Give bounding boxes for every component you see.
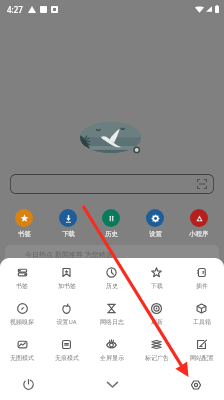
button[interactable]: 加书签 <box>44 261 89 297</box>
staticText: 加书签 <box>58 282 76 290</box>
button[interactable]: 小程序 <box>189 209 209 238</box>
staticText: 历史 <box>105 230 118 238</box>
button[interactable]: 历史 <box>89 261 134 297</box>
staticText: 标记广告 <box>145 354 169 362</box>
staticText: 无图模式 <box>10 354 34 362</box>
staticText: 全屏显示 <box>100 354 124 362</box>
button[interactable]: 网站配置 <box>179 333 224 369</box>
button[interactable]: 下载 <box>59 209 77 238</box>
staticText: 无痕模式 <box>55 354 79 362</box>
staticText: 设置UA <box>56 318 77 326</box>
button[interactable]: 工具箱 <box>179 297 224 333</box>
staticText: 下载 <box>62 230 75 238</box>
staticText: 历史 <box>106 282 118 290</box>
button[interactable]: 视频嗅探 <box>0 297 44 333</box>
staticText: 刷新 <box>151 318 163 326</box>
staticText: 插件 <box>196 282 208 290</box>
button[interactable]: 设置UA <box>44 297 89 333</box>
button[interactable]: 插件 <box>179 261 224 297</box>
button[interactable]: Exit <box>0 369 57 400</box>
button[interactable]: 书签 <box>15 209 33 238</box>
staticText: 书签 <box>16 282 28 290</box>
button[interactable]: 网络日志 <box>89 297 134 333</box>
staticText: 4:27 <box>7 4 23 15</box>
staticText: 网站配置 <box>190 354 214 362</box>
button[interactable]: Scan QR code <box>10 174 214 194</box>
button[interactable]: 书签 <box>0 261 44 297</box>
button[interactable]: 无图模式 <box>0 333 44 369</box>
button[interactable]: Settings <box>167 369 224 400</box>
staticText: 今日热点 新闻推荐 为您精选 <box>25 250 113 260</box>
button[interactable]: 无痕模式 <box>44 333 89 369</box>
staticText: 设置 <box>149 230 162 238</box>
staticText: 网络日志 <box>100 318 124 326</box>
staticText: 小程序 <box>189 230 209 238</box>
button[interactable]: 设置 <box>146 209 164 238</box>
button[interactable]: 刷新 <box>134 297 179 333</box>
staticText: 视频嗅探 <box>10 318 34 326</box>
button[interactable]: 下载 <box>134 261 179 297</box>
button[interactable]: Collapse menu <box>57 369 167 400</box>
button[interactable]: 历史 <box>102 209 120 238</box>
button[interactable]: 标记广告 <box>134 333 179 369</box>
staticText: 工具箱 <box>193 318 211 326</box>
staticText: 书签 <box>18 230 31 238</box>
button[interactable]: 全屏显示 <box>89 333 134 369</box>
staticText: 下载 <box>151 282 163 290</box>
other: Scan QR code <box>197 179 207 189</box>
